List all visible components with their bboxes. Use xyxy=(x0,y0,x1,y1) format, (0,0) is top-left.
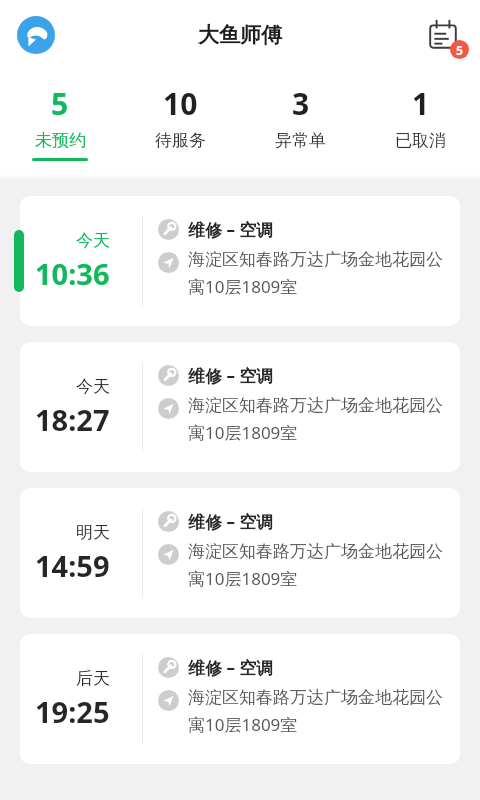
button[interactable]: Schedule xyxy=(420,12,466,58)
staticText: 维修 – 空调 xyxy=(188,218,274,241)
staticText: 18:27 xyxy=(35,400,110,439)
staticText: 海淀区知春路万达广场金地花园公寓10层1809室 xyxy=(188,541,452,590)
button[interactable]: 明天 xyxy=(20,488,460,618)
staticText: 明天 xyxy=(76,522,110,543)
button[interactable]: 3 xyxy=(240,70,360,182)
staticText: 维修 – 空调 xyxy=(188,656,274,679)
staticText: 10 xyxy=(163,83,198,124)
button[interactable]: 5 xyxy=(0,70,120,182)
staticText: 海淀区知春路万达广场金地花园公寓10层1809室 xyxy=(188,687,452,736)
staticText: 海淀区知春路万达广场金地花园公寓10层1809室 xyxy=(188,249,452,298)
staticText: 5 xyxy=(456,42,463,58)
staticText: 1 xyxy=(412,83,430,124)
button[interactable]: 今天 xyxy=(20,196,460,326)
staticText: 14:59 xyxy=(35,546,110,585)
staticText: 维修 – 空调 xyxy=(188,364,274,387)
staticText: 海淀区知春路万达广场金地花园公寓10层1809室 xyxy=(188,395,452,444)
staticText: 已取消 xyxy=(395,130,446,151)
button[interactable]: App logo xyxy=(14,13,58,57)
staticText: 3 xyxy=(292,83,310,124)
staticText: 待服务 xyxy=(155,130,206,151)
staticText: 19:25 xyxy=(35,692,110,731)
button[interactable]: 后天 xyxy=(20,634,460,764)
staticText: 5 xyxy=(51,83,69,124)
staticText: 维修 – 空调 xyxy=(188,510,274,533)
button[interactable]: 10 xyxy=(120,70,240,182)
staticText: 未预约 xyxy=(35,130,86,151)
button[interactable]: 今天 xyxy=(20,342,460,472)
staticText: 今天 xyxy=(76,376,110,397)
staticText: 今天 xyxy=(76,230,110,251)
staticText: 后天 xyxy=(76,668,110,689)
staticText: 10:36 xyxy=(35,254,110,293)
staticText: 异常单 xyxy=(275,130,326,151)
staticText: 大鱼师傅 xyxy=(198,22,282,48)
button[interactable]: 1 xyxy=(360,70,480,182)
